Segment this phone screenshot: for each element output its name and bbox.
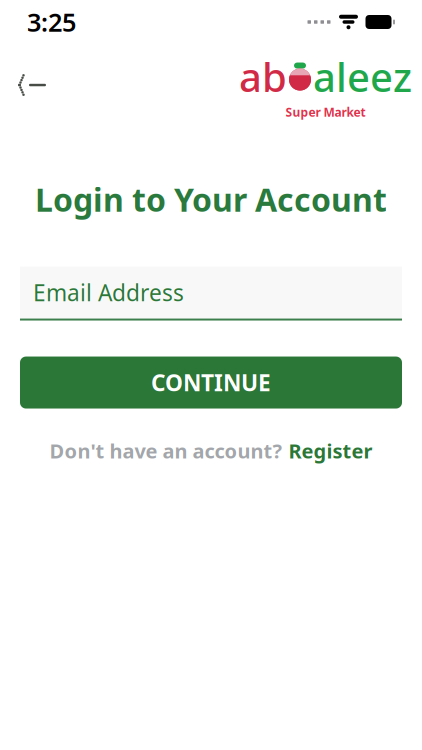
staticText: Email Address [33, 277, 184, 308]
staticText: Login to Your Account [35, 178, 387, 221]
staticText: aleez [313, 50, 412, 103]
staticText: ab [239, 50, 287, 103]
staticText: 3:25 [27, 5, 76, 39]
staticText: Super Market [285, 104, 365, 120]
staticText: Don't have an account? [49, 437, 282, 464]
staticText: CONTINUE [151, 367, 271, 398]
staticText: Register [288, 437, 372, 464]
button[interactable]: Don't have an account? [27, 426, 394, 475]
button[interactable]: CONTINUE [20, 356, 402, 408]
button[interactable]: Back [8, 62, 56, 108]
